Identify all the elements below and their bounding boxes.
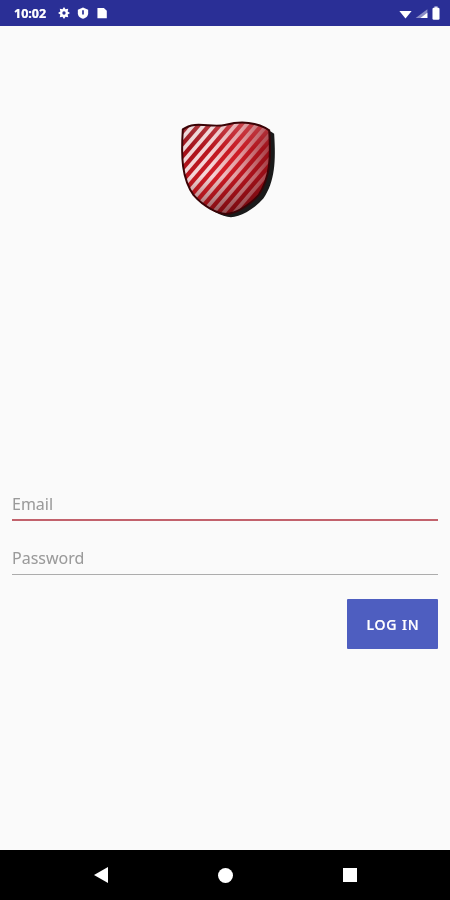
button[interactable]: Recent apps — [333, 850, 367, 900]
button[interactable]: Back — [84, 850, 118, 900]
staticText: Email — [12, 493, 54, 515]
staticText: Password — [12, 547, 85, 569]
button[interactable]: Email — [12, 493, 438, 521]
staticText: 10:02 — [14, 5, 47, 22]
button[interactable]: LOG IN — [347, 599, 438, 649]
staticText: LOG IN — [366, 615, 420, 634]
button[interactable]: Password — [12, 547, 438, 575]
button[interactable]: Home — [208, 850, 242, 900]
